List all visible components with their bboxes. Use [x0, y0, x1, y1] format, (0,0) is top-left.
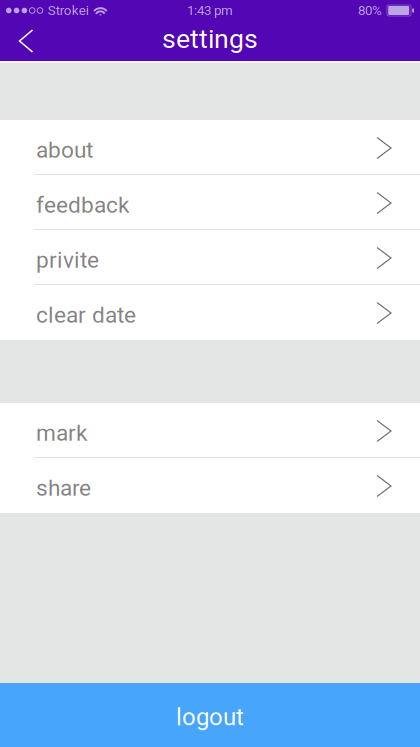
staticText: logout — [176, 703, 244, 731]
button[interactable]: feedback — [0, 175, 420, 230]
staticText: privite — [36, 247, 99, 273]
button[interactable]: logout — [0, 683, 420, 747]
staticText: 80% — [358, 3, 382, 18]
button[interactable]: privite — [0, 230, 420, 285]
staticText: feedback — [36, 192, 129, 218]
staticText: mark — [36, 420, 87, 446]
staticText: about — [36, 137, 93, 163]
staticText: share — [36, 475, 91, 501]
button[interactable]: about — [0, 120, 420, 175]
button[interactable]: share — [0, 458, 420, 513]
button[interactable]: Back — [6, 21, 46, 61]
staticText: settings — [162, 23, 258, 55]
staticText: Strokei — [48, 3, 89, 18]
button[interactable]: mark — [0, 403, 420, 458]
button[interactable]: clear date — [0, 285, 420, 340]
staticText: clear date — [36, 302, 136, 328]
staticText: 1:43 pm — [187, 3, 233, 18]
